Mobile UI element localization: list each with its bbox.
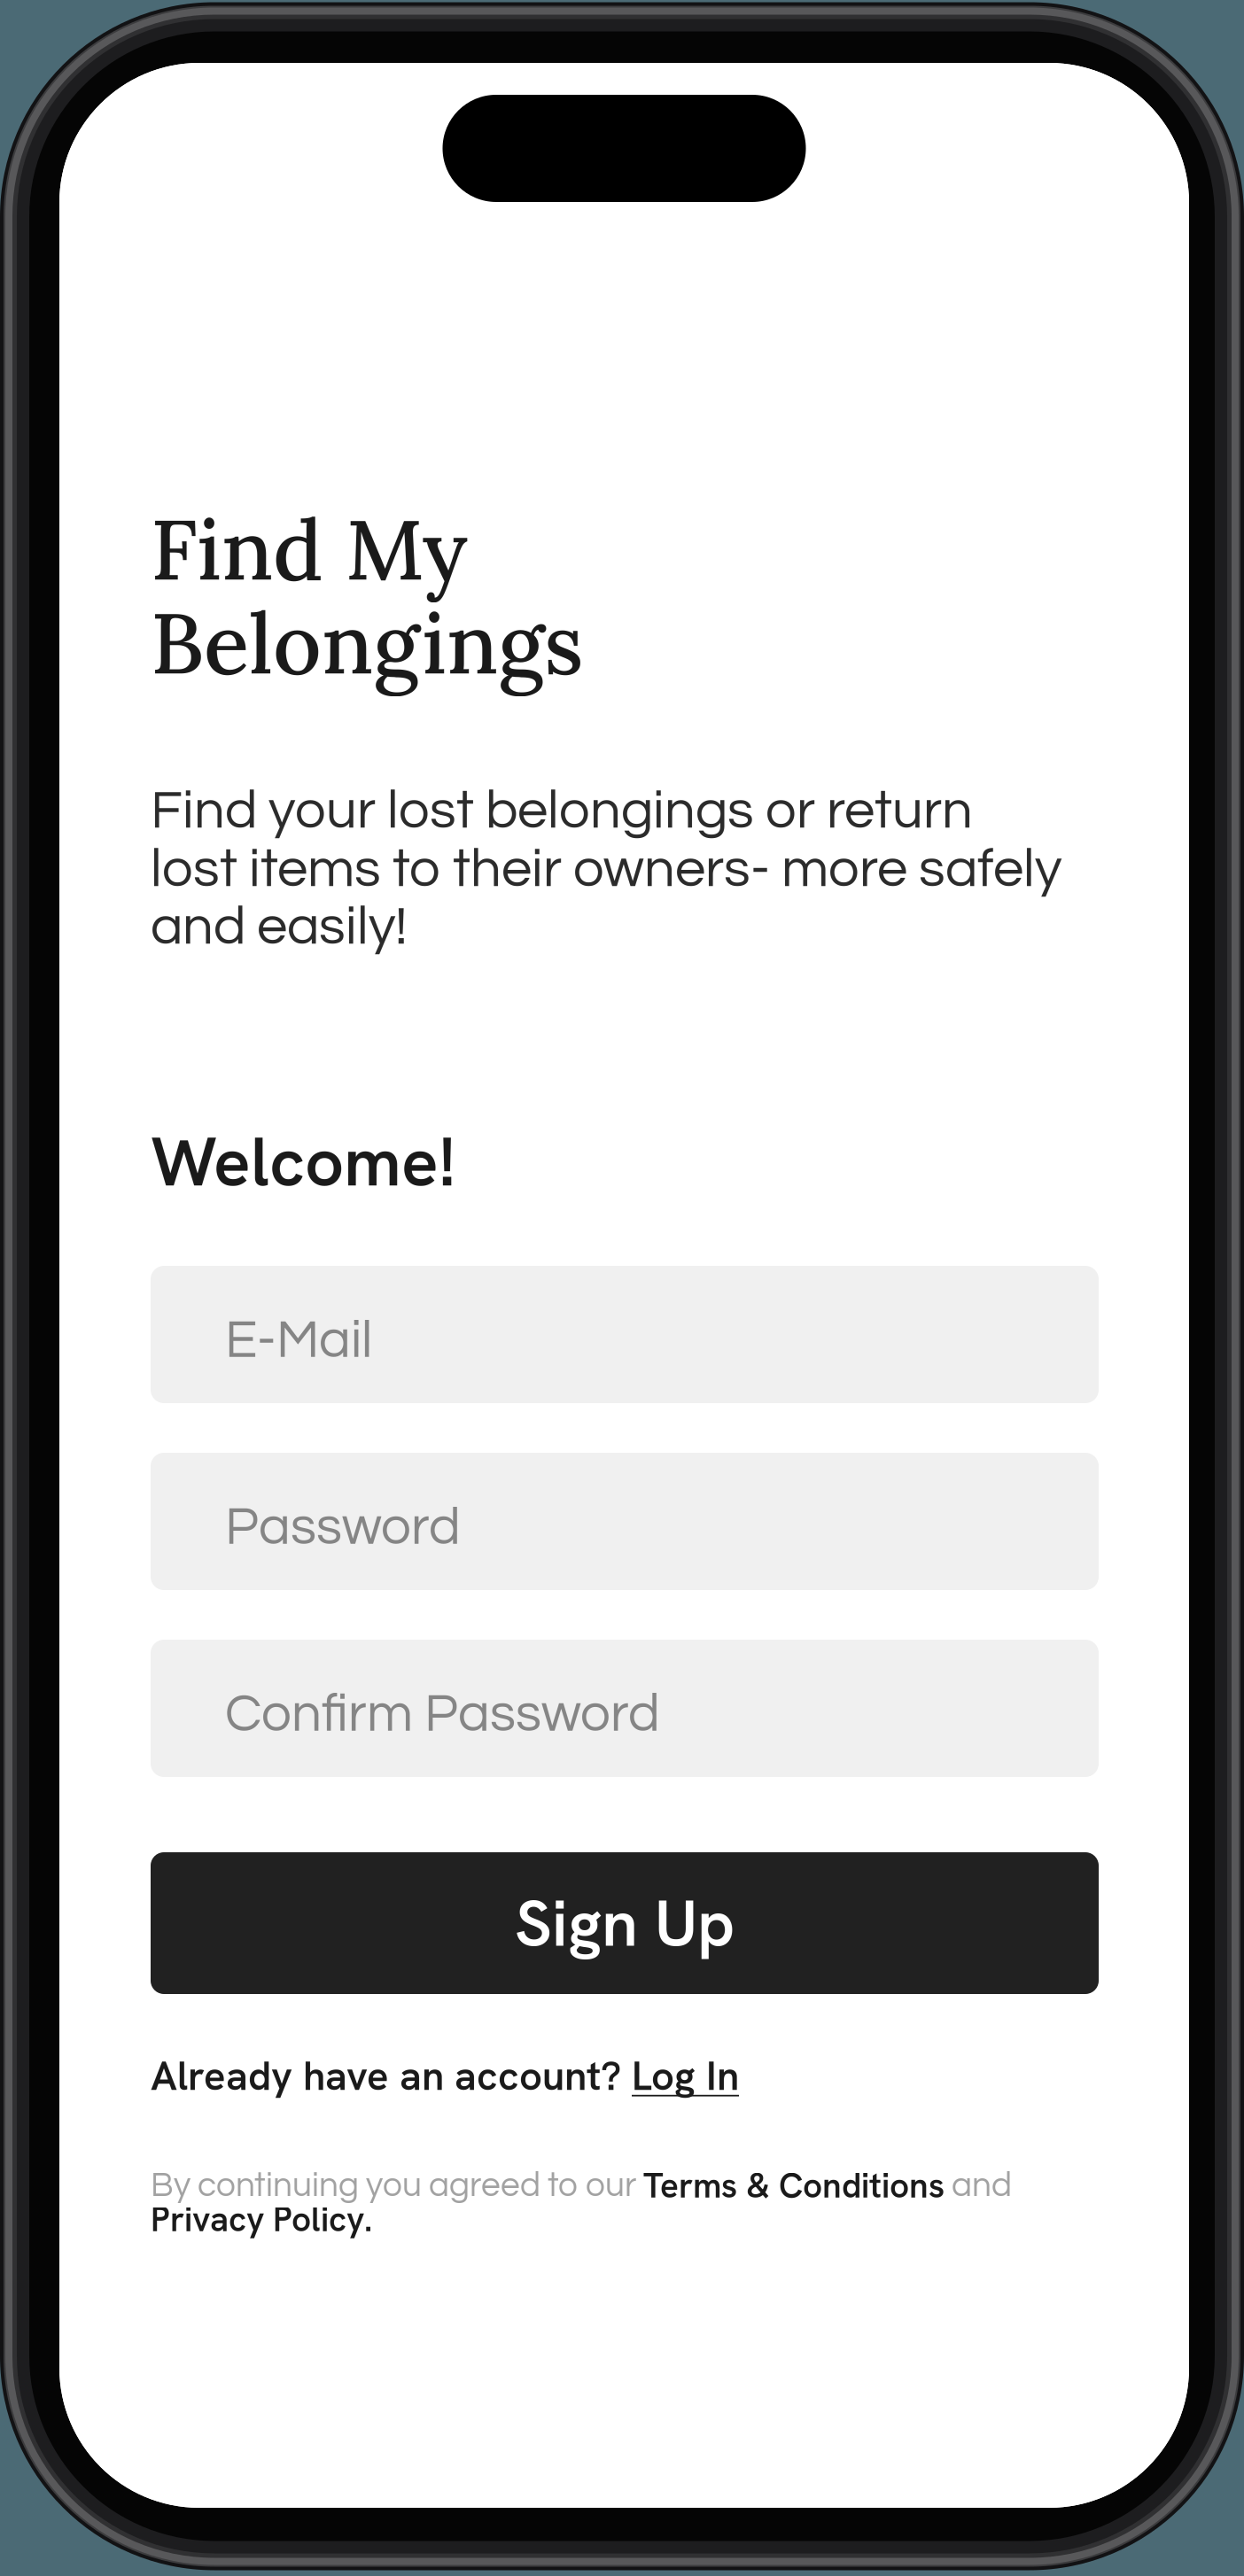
button[interactable]: Confirm Password <box>151 1640 1099 1777</box>
staticText: By continuing you agreed to our <box>151 2168 643 2203</box>
button[interactable]: Log In <box>632 2050 739 2102</box>
staticText: Password <box>225 1500 461 1555</box>
staticText: lost items to their owners- more safely <box>151 842 1061 898</box>
button[interactable]: E-Mail <box>151 1266 1099 1403</box>
staticText: Find your lost belongings or return <box>151 783 973 839</box>
staticText: Find My <box>151 495 468 603</box>
staticText: Confirm Password <box>225 1687 660 1742</box>
staticText: Belongings <box>151 589 583 696</box>
staticText: Already have an account? <box>151 2050 632 2102</box>
staticText: Welcome! <box>151 1117 455 1206</box>
staticText: and easily! <box>151 899 408 955</box>
button[interactable]: Terms & Conditions <box>643 2163 945 2208</box>
staticText: and <box>945 2168 1012 2203</box>
staticText: Log In <box>632 2050 739 2102</box>
button[interactable]: Password <box>151 1453 1099 1590</box>
button[interactable]: Sign Up <box>151 1852 1099 1994</box>
staticText: Privacy Policy. <box>151 2197 372 2242</box>
staticText: E-Mail <box>225 1313 372 1368</box>
staticText: Sign Up <box>515 1881 735 1965</box>
staticText: Terms & Conditions <box>643 2163 945 2208</box>
